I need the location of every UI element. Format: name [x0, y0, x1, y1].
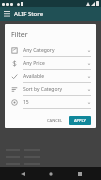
button[interactable]: Recent apps	[73, 167, 86, 180]
staticText: Filter	[11, 30, 28, 40]
button[interactable]: Any Category	[11, 47, 91, 60]
button[interactable]: Open navigation menu	[0, 7, 14, 21]
staticText: Any Category	[23, 47, 87, 54]
button[interactable]: Home	[44, 167, 57, 180]
button[interactable]: Back	[16, 167, 29, 180]
button[interactable]: APPLY	[69, 116, 91, 125]
staticText: Any Price	[23, 60, 87, 67]
staticText: Available	[23, 73, 87, 80]
button[interactable]: Any Price	[11, 60, 91, 73]
staticText: ALIF Store	[14, 10, 44, 18]
staticText: Sort by Category	[23, 86, 87, 93]
staticText: 15	[23, 99, 87, 106]
button[interactable]: CANCEL	[44, 116, 66, 125]
staticText: APPLY	[74, 118, 86, 123]
staticText: CANCEL	[47, 118, 63, 123]
button[interactable]: Sort by Category	[11, 86, 91, 99]
button[interactable]: 15	[11, 99, 91, 112]
button[interactable]: Available	[11, 73, 91, 86]
